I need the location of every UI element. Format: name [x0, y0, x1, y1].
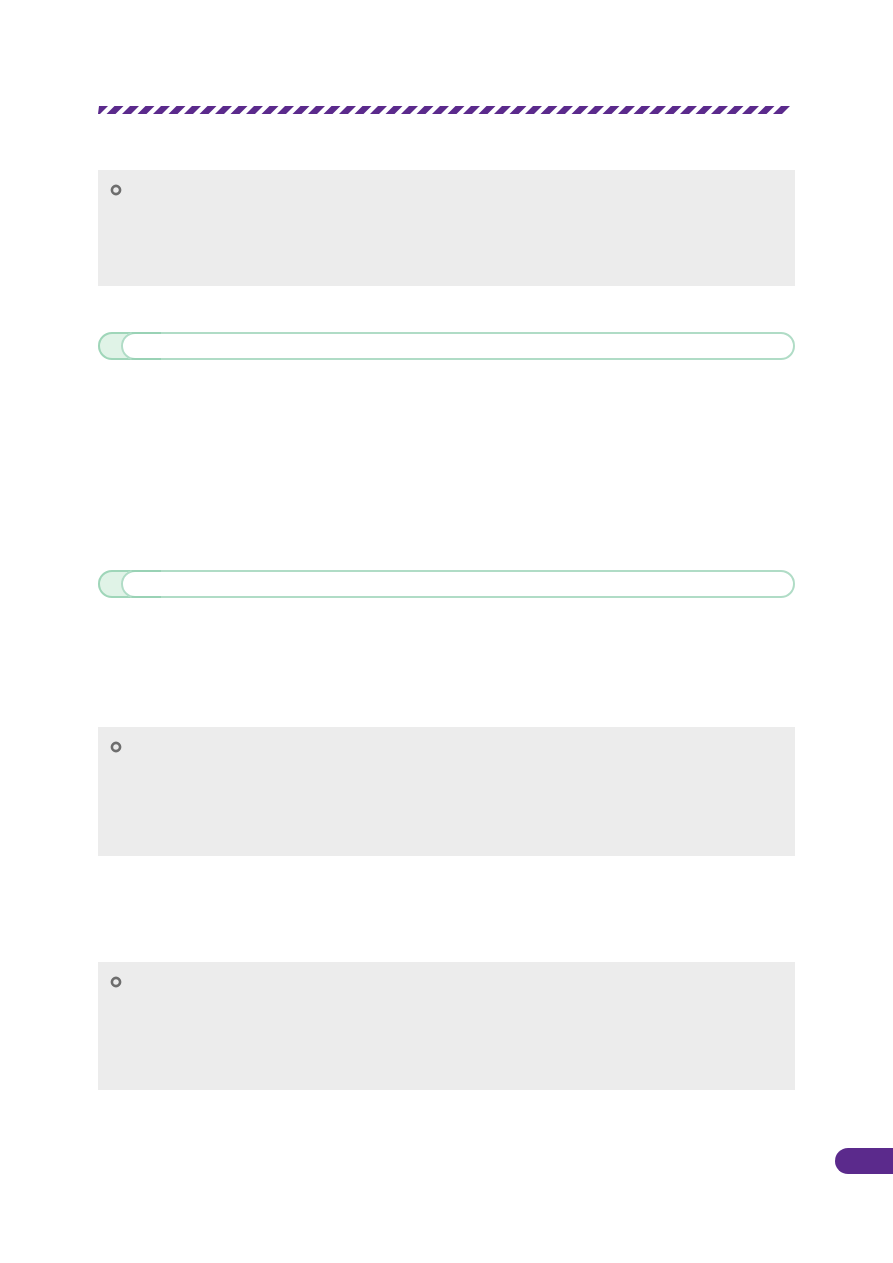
- button[interactable]: Content card: [98, 727, 795, 856]
- button[interactable]: Content card: [98, 170, 795, 286]
- button[interactable]: Input field: [98, 332, 795, 360]
- button[interactable]: Primary action: [835, 1148, 893, 1174]
- button[interactable]: Input field: [98, 570, 795, 598]
- button[interactable]: Content card: [98, 962, 795, 1090]
